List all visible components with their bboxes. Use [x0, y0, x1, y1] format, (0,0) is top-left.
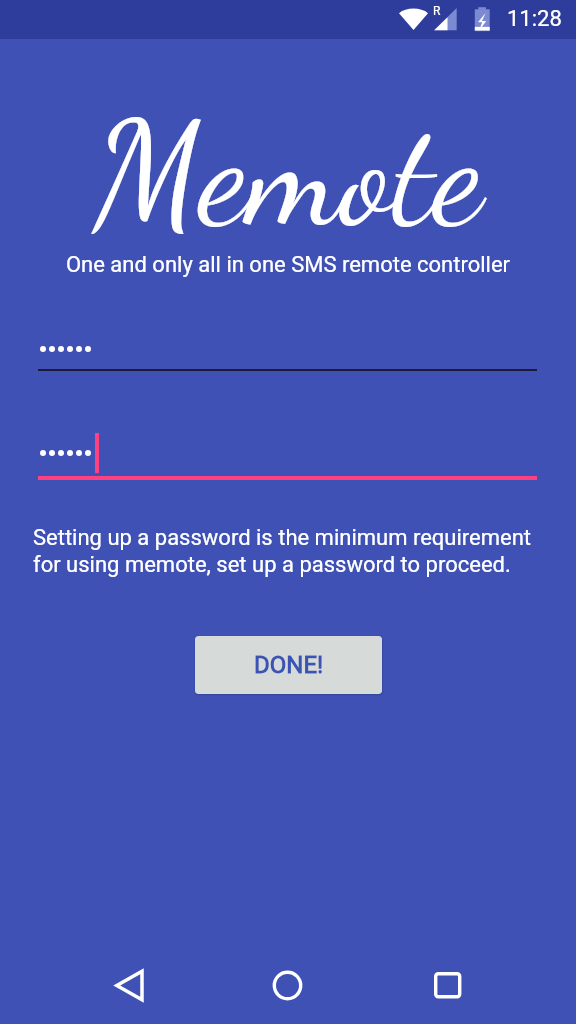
staticText: One and only all in one SMS remote contr… — [0, 252, 576, 278]
staticText: Memote — [0, 89, 576, 262]
button[interactable]: Recents — [420, 956, 476, 1012]
button[interactable]: Home — [259, 956, 315, 1012]
button[interactable]: DONE! — [195, 636, 382, 694]
button[interactable]: Back — [100, 956, 156, 1012]
staticText: R — [433, 4, 441, 18]
staticText: Setting up a password is the minimum req… — [33, 525, 532, 578]
staticText: DONE! — [254, 651, 324, 679]
staticText: 11:28 — [507, 6, 562, 32]
